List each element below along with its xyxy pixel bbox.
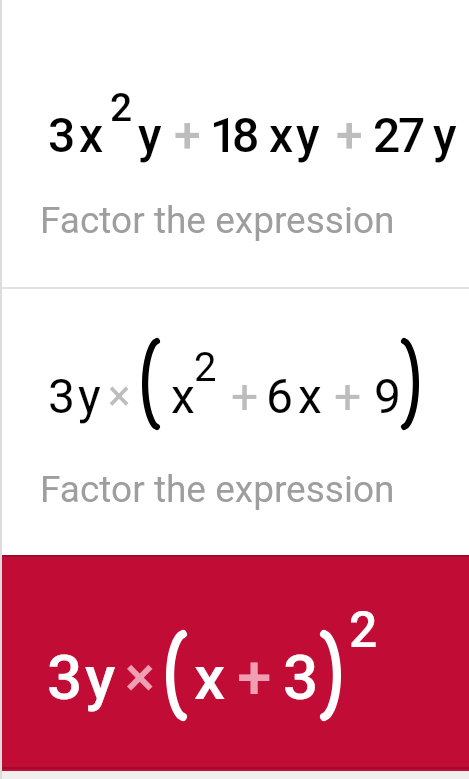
staticText: y [78,368,101,424]
staticText: x [79,107,104,163]
staticText: + [237,640,272,713]
staticText: x [298,368,322,424]
staticText: x [269,107,294,163]
staticText: + [231,368,259,424]
staticText: 2 [194,344,217,391]
staticText: 8 [232,107,260,163]
staticText: x [171,368,195,424]
staticText: 9 [374,368,401,424]
staticText: 3 [283,641,319,714]
staticText: 3 [47,641,83,714]
staticText: Factor the expression [40,199,395,242]
staticText: y [296,107,320,163]
staticText: 3 [48,107,76,163]
staticText: + [334,368,362,424]
staticText: + [336,107,363,163]
staticText: 6 [266,368,293,424]
staticText: 7 [398,107,426,163]
staticText: × [108,371,131,420]
staticText: y [138,107,162,163]
button[interactable]: Result 3y times open paren x plus 3 clos… [0,555,469,771]
staticText: × [125,644,155,710]
staticText: 3 [48,368,75,424]
button[interactable]: 3y times open paren x squared plus 6x pl… [0,289,469,555]
staticText: + [174,107,201,163]
staticText: 2 [373,107,401,163]
staticText: 2 [110,85,133,131]
staticText: 2 [349,601,378,660]
staticText: y [433,107,457,163]
staticText: y [85,641,116,714]
button[interactable]: 3x squared y plus 18xy plus 27y [0,0,469,287]
staticText: 1 [210,107,238,163]
staticText: x [194,641,226,714]
staticText: Factor the expression [40,468,395,511]
